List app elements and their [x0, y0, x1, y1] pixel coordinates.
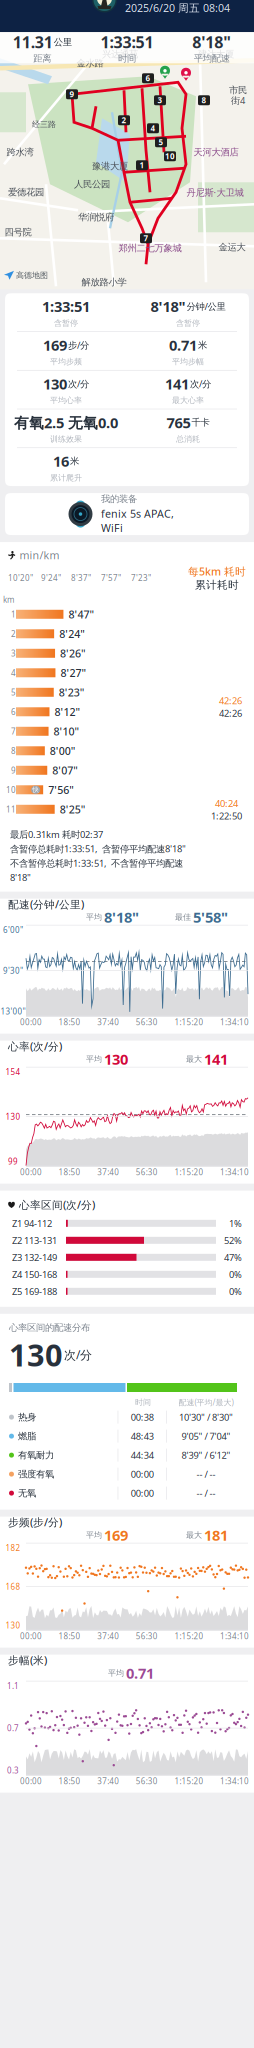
staticText: 00:00: [20, 1776, 42, 1786]
staticText: 含暂停总耗时1:33:51, 含暂停平均配速8'18": [10, 842, 186, 855]
staticText: 1:34:10: [220, 1776, 249, 1786]
staticText: 1:15:20: [174, 1631, 203, 1641]
staticText: 心率区间的配速分布: [9, 1322, 90, 1333]
staticText: 8'18": [104, 907, 139, 927]
staticText: 1:15:20: [174, 1017, 203, 1027]
staticText: 次/分: [64, 1347, 92, 1363]
staticText: 最大心率: [172, 395, 204, 405]
staticText: 丹尼斯·大卫城: [186, 186, 243, 198]
staticText: 169: [43, 335, 67, 355]
staticText: 7'57": [101, 573, 121, 583]
staticText: 168: [5, 1581, 20, 1592]
staticText: 总消耗: [176, 434, 200, 444]
staticText: km: [3, 594, 14, 605]
staticText: 10: [165, 151, 175, 162]
staticText: 56:30: [136, 1167, 158, 1177]
staticText: 765: [166, 413, 190, 432]
staticText: 11.31: [13, 31, 53, 53]
staticText: 18:50: [59, 1167, 81, 1177]
staticText: 跨水湾: [6, 146, 33, 158]
staticText: 56:30: [136, 1776, 158, 1786]
staticText: 米: [198, 339, 207, 351]
staticText: 平均步幅: [172, 357, 204, 367]
staticText: 建达大厦: [198, 48, 234, 60]
staticText: 配速(平均/最大): [178, 1397, 233, 1408]
staticText: 次/分: [68, 378, 89, 390]
staticText: 181: [204, 1525, 228, 1545]
staticText: 5: [11, 687, 16, 698]
staticText: 高德地图: [16, 270, 48, 280]
staticText: 时间: [135, 1397, 151, 1407]
staticText: 130: [5, 1111, 20, 1122]
staticText: 公里: [54, 36, 72, 48]
staticText: 00:00: [131, 1468, 154, 1480]
staticText: 47%: [224, 1251, 242, 1263]
staticText: 0.7: [7, 1723, 19, 1733]
staticText: 4: [11, 667, 16, 678]
staticText: 0.71: [126, 1663, 154, 1683]
staticText: 40:24: [215, 797, 238, 810]
staticText: 4: [150, 123, 155, 134]
staticText: 8: [11, 745, 16, 756]
staticText: 8'23": [59, 685, 85, 699]
staticText: 182: [5, 1543, 20, 1553]
staticText: 平均: [86, 912, 102, 922]
staticText: 10'20": [8, 573, 33, 583]
staticText: 7'23": [131, 573, 151, 583]
staticText: 1:15:20: [174, 1167, 203, 1177]
staticText: 10: [6, 784, 16, 795]
staticText: Z1 94-112: [12, 1217, 52, 1229]
staticText: 平均步频: [50, 357, 82, 367]
staticText: Z5 169-188: [12, 1285, 57, 1297]
staticText: Z4 150-168: [12, 1268, 57, 1280]
staticText: 0%: [229, 1285, 242, 1297]
staticText: 训练效果: [50, 434, 82, 444]
staticText: 0.3: [7, 1765, 19, 1776]
staticText: 人民公园: [74, 178, 110, 190]
staticText: 5: [158, 137, 163, 148]
staticText: 最大: [186, 1054, 202, 1064]
staticText: 5'58": [193, 907, 228, 927]
staticText: 1:34:10: [220, 1017, 249, 1027]
button[interactable]: 我的装备: [0, 486, 254, 535]
staticText: 8'07": [52, 763, 78, 777]
staticText: 00:38: [131, 1411, 154, 1423]
staticText: 平均心率: [50, 395, 82, 405]
staticText: 平均: [86, 1530, 102, 1540]
staticText: 7: [11, 726, 16, 737]
staticText: 华润悦府: [78, 211, 114, 223]
staticText: 42:26: [219, 707, 242, 719]
staticText: 兴达通苑: [102, 48, 138, 60]
staticText: 无氧: [18, 1487, 36, 1499]
staticText: 步频(步/分): [8, 1515, 62, 1529]
staticText: 2: [11, 628, 16, 639]
staticText: 1:15:20: [174, 1776, 203, 1786]
staticText: 8'39" / 6'12": [181, 1449, 230, 1461]
staticText: 37:40: [97, 1631, 119, 1641]
staticText: 3: [157, 95, 162, 106]
staticText: 9'05" / 7'04": [181, 1430, 230, 1442]
staticText: min/km: [19, 548, 59, 562]
staticText: 8'37": [71, 573, 91, 583]
staticText: 含暂停: [54, 318, 78, 328]
staticText: 11: [6, 804, 16, 815]
staticText: 有氧耐力: [18, 1449, 54, 1461]
staticText: Z2 113-131: [12, 1234, 57, 1246]
staticText: 8'10": [53, 724, 79, 738]
staticText: 8'18": [10, 871, 31, 884]
staticText: 0%: [229, 1268, 242, 1280]
staticText: Z3 132-149: [12, 1251, 57, 1263]
staticText: 热身: [18, 1411, 36, 1423]
staticText: 130: [43, 374, 67, 393]
staticText: 56:30: [136, 1017, 158, 1027]
staticText: 42:26: [219, 694, 242, 707]
staticText: 8'24": [59, 627, 85, 641]
staticText: 爱德花园: [8, 186, 44, 198]
staticText: 四号院: [4, 226, 31, 238]
staticText: 分钟/公里: [186, 300, 225, 313]
staticText: 8'25": [60, 802, 86, 816]
staticText: 次/分: [190, 378, 211, 390]
staticText: 1:33:51: [42, 297, 90, 316]
staticText: 8'27": [60, 666, 86, 680]
staticText: 9'24": [41, 573, 61, 583]
